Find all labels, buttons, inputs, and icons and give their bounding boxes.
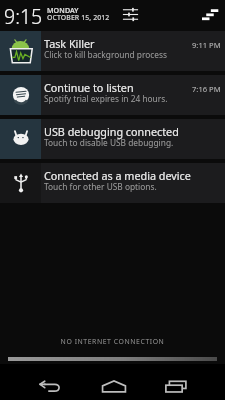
button[interactable]: Connected as a media device <box>0 163 225 203</box>
staticText: Click to kill background process <box>44 49 168 60</box>
other: Signal strength <box>202 9 219 21</box>
staticText: Continue to listen <box>44 80 134 95</box>
staticText: OCTOBER 15, 2012 <box>47 13 110 22</box>
button[interactable]: Back <box>25 364 74 400</box>
button[interactable]: USB debugging connected <box>0 119 225 159</box>
staticText: Spotify trial expires in 24 hours. <box>44 93 168 104</box>
staticText: Touch for other USB options. <box>44 181 157 192</box>
staticText: 7:16 PM <box>192 84 221 94</box>
staticText: Touch to disable USB debugging. <box>44 137 174 148</box>
staticText: MONDAY <box>47 5 79 15</box>
button[interactable]: Task Killer <box>0 31 225 71</box>
staticText: Connected as a media device <box>44 168 191 183</box>
button[interactable]: Recent apps <box>151 364 200 400</box>
staticText: 9:11 PM <box>192 40 221 50</box>
button[interactable]: Quick settings <box>121 6 140 23</box>
staticText: Task Killer <box>44 36 95 51</box>
staticText: NO INTERNET CONNECTION <box>0 337 225 346</box>
button[interactable]: Continue to listen <box>0 75 225 115</box>
staticText: USB debugging connected <box>44 124 179 139</box>
staticText: 9:15 <box>4 3 43 29</box>
button[interactable]: Home <box>89 364 138 400</box>
